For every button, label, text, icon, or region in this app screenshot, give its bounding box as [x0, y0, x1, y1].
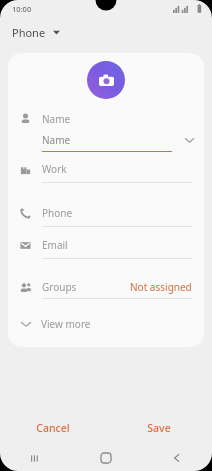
button[interactable]: Back [141, 445, 212, 471]
button[interactable]: Home [70, 445, 141, 471]
staticText: Groups [42, 280, 77, 294]
button[interactable]: Phone [0, 17, 212, 47]
staticText: Cancel [36, 421, 70, 435]
staticText: 10:00 [12, 4, 32, 14]
button[interactable]: Email [8, 232, 204, 259]
button[interactable]: Name [8, 129, 204, 152]
staticText: Phone [12, 25, 46, 40]
button[interactable]: Cancel [0, 411, 106, 445]
button[interactable]: Recent apps [0, 445, 70, 471]
staticText: Name [42, 133, 71, 147]
staticText: Work [42, 162, 67, 176]
staticText: Save [147, 421, 171, 435]
staticText: Email [42, 238, 68, 252]
button[interactable]: Save [106, 411, 212, 445]
staticText: Name [42, 112, 71, 126]
button[interactable]: Groups [8, 276, 204, 299]
button[interactable]: Work [8, 156, 204, 183]
staticText: Phone [42, 206, 73, 220]
button[interactable]: Add contact photo [87, 61, 125, 99]
button[interactable]: Name [8, 108, 204, 129]
staticText: Not assigned [130, 280, 192, 294]
button[interactable]: View more [8, 313, 204, 335]
staticText: View more [41, 317, 91, 331]
button[interactable]: Phone [8, 200, 204, 227]
